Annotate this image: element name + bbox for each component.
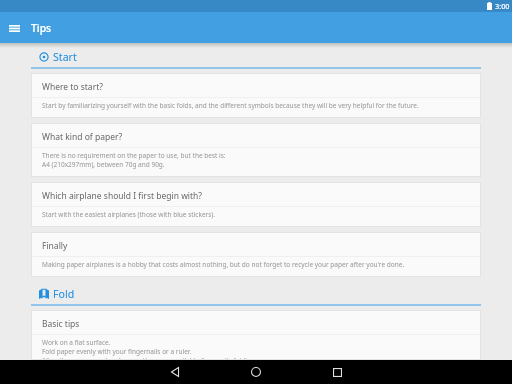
button[interactable]: Fold — [39, 287, 481, 301]
staticText: Start — [53, 50, 77, 64]
button[interactable]: Which airplane should I first begin with… — [32, 183, 480, 226]
staticText: Making paper airplanes is a hobby that c… — [42, 260, 405, 269]
button[interactable]: Finally — [32, 233, 480, 276]
staticText: Work on a flat surface. Fold paper evenl… — [42, 338, 257, 359]
button[interactable]: Home — [236, 360, 276, 384]
staticText: 3:00 — [495, 1, 510, 11]
staticText: Start with the easiest airplanes (those … — [42, 210, 216, 219]
staticText: Where to start? — [42, 81, 103, 93]
staticText: What kind of paper? — [42, 131, 123, 143]
button[interactable]: What kind of paper? — [32, 124, 480, 176]
button[interactable]: Where to start? — [32, 74, 480, 117]
staticText: Which airplane should I first begin with… — [42, 190, 203, 202]
staticText: Start by familiarizing yourself with the… — [42, 101, 419, 110]
staticText: There is no requirement on the paper to … — [42, 151, 226, 169]
button[interactable]: Basic tips — [32, 311, 480, 359]
button[interactable]: Back — [155, 360, 195, 384]
button[interactable]: Recent apps — [317, 360, 357, 384]
staticText: Fold — [53, 287, 75, 301]
button[interactable]: Open navigation menu — [0, 12, 28, 43]
staticText: Basic tips — [42, 318, 80, 330]
staticText: Tips — [31, 21, 52, 35]
button[interactable]: Start — [39, 50, 481, 64]
staticText: Finally — [42, 240, 68, 252]
